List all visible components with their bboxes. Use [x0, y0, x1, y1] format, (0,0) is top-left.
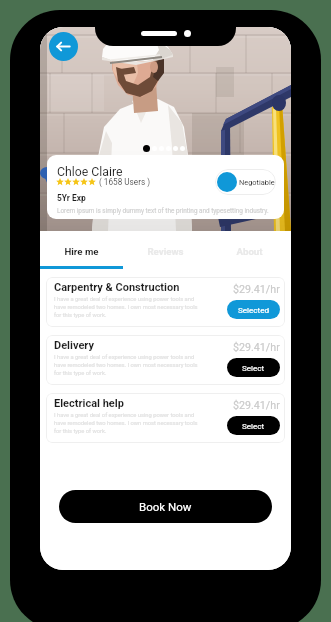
staticText: 5Yr Exp [57, 193, 86, 203]
staticText: ( 1658 Users ) [99, 177, 151, 187]
staticText: Delivery [54, 339, 95, 352]
staticText: Selected [238, 305, 270, 314]
staticText: Lorem ipsum is simply dummy text of the … [57, 207, 269, 215]
button[interactable]: Negotiable [215, 169, 276, 195]
staticText: Hire me [64, 246, 99, 257]
staticText: Select [242, 363, 265, 372]
staticText: Reviews [147, 246, 184, 257]
staticText: Chloe Claire [57, 165, 123, 179]
staticText: About [236, 246, 263, 257]
staticText: Electrical help [54, 397, 124, 410]
staticText: Negotiable [239, 178, 275, 187]
staticText: I have a great deal of experience using … [54, 412, 198, 434]
button[interactable]: Reviews [123, 246, 207, 269]
staticText: I have a great deal of experience using … [54, 296, 198, 318]
button[interactable]: Back [49, 32, 78, 61]
button[interactable]: Electrical help [46, 393, 285, 443]
button[interactable]: Book Now [59, 490, 272, 523]
button[interactable]: Carpentry & Construction [46, 277, 285, 327]
button[interactable]: Select [227, 358, 280, 377]
staticText: $29.41/hr [233, 399, 280, 412]
staticText: Carpentry & Construction [54, 281, 180, 294]
staticText: Book Now [139, 500, 192, 513]
staticText: I have a great deal of experience using … [54, 354, 198, 376]
staticText: $29.41/hr [233, 283, 280, 296]
button[interactable]: Delivery [46, 335, 285, 385]
button[interactable]: About [207, 246, 291, 269]
staticText: $29.41/hr [233, 341, 280, 354]
button[interactable]: Select [227, 416, 280, 435]
button[interactable]: Hire me [40, 246, 123, 269]
button[interactable]: Selected [227, 300, 280, 319]
staticText: Select [242, 421, 265, 430]
